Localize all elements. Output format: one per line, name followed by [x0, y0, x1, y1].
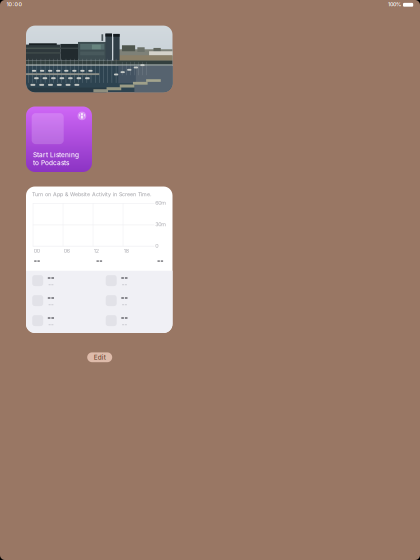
staticText: to Podcasts	[33, 159, 69, 167]
staticText: 18	[124, 248, 129, 254]
button[interactable]: Edit	[87, 352, 112, 362]
staticText: 30m	[155, 221, 166, 227]
button[interactable]: Start Listening to Podcasts	[26, 106, 92, 172]
staticText: Start Listening	[33, 151, 79, 159]
staticText: 06	[64, 248, 70, 254]
staticText: 100%	[388, 1, 401, 7]
staticText: 0	[155, 242, 158, 249]
staticText: 00	[34, 248, 40, 254]
staticText: 10:00	[6, 1, 22, 8]
staticText: Edit	[94, 353, 106, 361]
staticText: Turn on App & Website Activity in Screen…	[32, 191, 152, 197]
button[interactable]: Photos widget	[26, 26, 172, 92]
staticText: 60m	[155, 199, 166, 206]
staticText: 12	[94, 248, 99, 254]
button[interactable]: Screen Time widget	[26, 186, 172, 333]
